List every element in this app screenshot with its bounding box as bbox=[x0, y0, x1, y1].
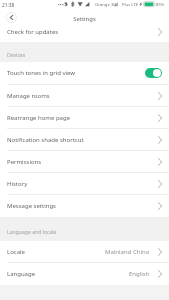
staticText: Plus LTE bbox=[122, 2, 139, 8]
button[interactable]: Manage rooms bbox=[0, 85, 169, 106]
staticText: 85% bbox=[156, 2, 165, 8]
staticText: Locale bbox=[7, 248, 25, 256]
staticText: Touch tones in grid view bbox=[7, 69, 76, 77]
staticText: English bbox=[129, 270, 150, 278]
staticText: Settings bbox=[73, 15, 96, 23]
staticText: Orange 3G bbox=[95, 2, 117, 8]
staticText: Language and locale bbox=[7, 229, 57, 236]
staticText: Mainland China bbox=[105, 248, 150, 256]
button[interactable]: Back bbox=[6, 12, 17, 23]
button[interactable]: Rearrange home page bbox=[0, 107, 169, 128]
button[interactable]: Language bbox=[0, 263, 169, 285]
button[interactable]: Locale bbox=[0, 241, 169, 262]
staticText: Devices bbox=[7, 52, 26, 59]
staticText: Check for updates bbox=[7, 28, 59, 36]
staticText: History bbox=[7, 180, 28, 188]
staticText: 21:38 bbox=[2, 2, 15, 9]
button[interactable]: Message settings bbox=[0, 195, 169, 217]
staticText: Rearrange home page bbox=[7, 114, 71, 122]
button[interactable]: Permissions bbox=[0, 151, 169, 172]
staticText: Notification shade shortcut bbox=[7, 136, 84, 144]
staticText: Manage rooms bbox=[7, 92, 50, 100]
button[interactable]: Notification shade shortcut bbox=[0, 129, 169, 150]
button[interactable]: History bbox=[0, 173, 169, 194]
staticText: Permissions bbox=[7, 158, 42, 166]
staticText: Language bbox=[7, 270, 36, 278]
button[interactable]: Touch tones in grid view bbox=[0, 62, 169, 84]
staticText: Message settings bbox=[7, 202, 56, 210]
button[interactable]: Check for updates bbox=[0, 22, 169, 42]
